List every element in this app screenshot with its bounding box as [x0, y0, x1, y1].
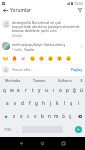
staticText: y	[38, 87, 41, 93]
button[interactable]: k	[54, 97, 61, 110]
button[interactable]: Recent apps	[59, 137, 68, 150]
staticText: 2 hafta	[12, 34, 22, 38]
button[interactable]: Back	[0, 6, 10, 14]
button[interactable]: w	[8, 84, 15, 97]
staticText: w	[10, 87, 14, 93]
button[interactable]: Emoji reaction	[55, 54, 64, 63]
button[interactable]: n	[46, 110, 53, 123]
button[interactable]: ğ	[71, 84, 78, 97]
button[interactable]: Like	[78, 42, 84, 50]
staticText: k	[56, 100, 59, 106]
button[interactable]: z	[11, 110, 18, 123]
button[interactable]: t	[29, 84, 36, 97]
staticText: ğ	[73, 87, 76, 93]
button[interactable]: i	[75, 97, 82, 110]
button[interactable]: v	[32, 110, 39, 123]
button[interactable]: Tamam	[26, 76, 52, 84]
button[interactable]: ı	[50, 84, 57, 97]
button[interactable]: j	[47, 97, 54, 110]
button[interactable]: p	[64, 84, 71, 97]
staticText: 1 hafta	[12, 48, 22, 52]
button[interactable]: f	[26, 97, 33, 110]
button[interactable]: Backspace	[74, 110, 85, 123]
button[interactable]: g	[33, 97, 40, 110]
button[interactable]: ö	[60, 110, 67, 123]
staticText: Yanıtla	[24, 48, 34, 52]
button[interactable]: Yanıtla	[24, 48, 34, 52]
staticText: x	[20, 113, 23, 119]
button[interactable]: Emoji reaction	[28, 54, 37, 63]
button[interactable]: destegimlik Bunuhsnzl en çok kaçıyorlard…	[0, 17, 85, 38]
staticText: q	[3, 87, 6, 93]
staticText: ?123	[4, 128, 11, 132]
button[interactable]: a	[3, 97, 11, 110]
staticText: z	[13, 113, 16, 119]
button[interactable]: e	[15, 84, 22, 97]
staticText: s	[14, 100, 17, 106]
button[interactable]: ü	[78, 84, 85, 97]
button[interactable]: b	[39, 110, 46, 123]
staticText: Paylaş	[71, 67, 82, 72]
button[interactable]: Send	[75, 126, 82, 133]
staticText: b	[41, 113, 44, 119]
staticText: 10:04	[74, 1, 83, 6]
staticText: u	[45, 87, 48, 93]
staticText: destegimlik Bunuhsnzl en çok kaçıyorlard…	[12, 20, 80, 33]
button[interactable]: s	[11, 97, 19, 110]
staticText: ü	[80, 87, 83, 93]
staticText: a	[6, 100, 9, 106]
button[interactable]: Kullanıcı	[52, 76, 78, 84]
button[interactable]: c	[25, 110, 32, 123]
staticText: Yorum ekle...	[12, 67, 34, 72]
staticText: n	[48, 113, 51, 119]
staticText: p	[66, 87, 69, 93]
button[interactable]: mehmetyusufsayti Harika olmuş	[0, 42, 85, 52]
button[interactable]: Paylaş	[70, 66, 83, 73]
button[interactable]: ç	[67, 110, 74, 123]
button[interactable]: Emoji reaction	[10, 54, 19, 63]
button[interactable]: Emoji reaction	[37, 54, 46, 63]
button[interactable]: Home	[38, 137, 47, 150]
button[interactable]: y	[36, 84, 43, 97]
staticText: t	[32, 87, 34, 93]
button[interactable]: Merhaba	[0, 76, 26, 84]
button[interactable]: Emoji reaction	[19, 54, 28, 63]
staticText: e	[17, 87, 20, 93]
button[interactable]: q	[0, 84, 8, 97]
button[interactable]: ?123	[0, 123, 14, 136]
staticText: j	[50, 100, 52, 106]
button[interactable]: Shift	[0, 110, 11, 123]
staticText: ö	[62, 113, 65, 119]
button[interactable]: Emoji reaction	[1, 54, 10, 63]
button[interactable]: Emoji reaction	[46, 54, 55, 63]
staticText: mehmetyusufsayti Harika olmuş	[12, 42, 66, 47]
button[interactable]: ,	[14, 123, 22, 136]
button[interactable]: Filter comments	[74, 6, 85, 14]
button[interactable]: Yorum ekle...	[12, 63, 70, 75]
button[interactable]: l	[61, 97, 68, 110]
staticText: r	[25, 87, 27, 93]
staticText: ı	[53, 87, 55, 93]
button[interactable]: m	[53, 110, 60, 123]
button[interactable]: h	[40, 97, 47, 110]
button[interactable]: u	[43, 84, 50, 97]
button[interactable]: d	[19, 97, 26, 110]
button[interactable]: Emoji reaction	[64, 54, 73, 63]
button[interactable]: Back	[17, 137, 26, 150]
button[interactable]: r	[22, 84, 29, 97]
button[interactable]: x	[18, 110, 25, 123]
staticText: Tamam	[33, 78, 46, 83]
staticText: g	[35, 100, 38, 106]
staticText: Yorumlar	[10, 7, 32, 14]
staticText: f	[29, 100, 31, 106]
staticText: ,	[17, 127, 19, 133]
staticText: Kullanıcı	[58, 78, 73, 83]
button[interactable]: Voice input	[78, 76, 85, 84]
staticText: m	[54, 113, 59, 119]
button[interactable]: o	[57, 84, 64, 97]
staticText: .	[66, 127, 68, 133]
button[interactable]: ş	[68, 97, 75, 110]
staticText: c	[27, 113, 30, 119]
